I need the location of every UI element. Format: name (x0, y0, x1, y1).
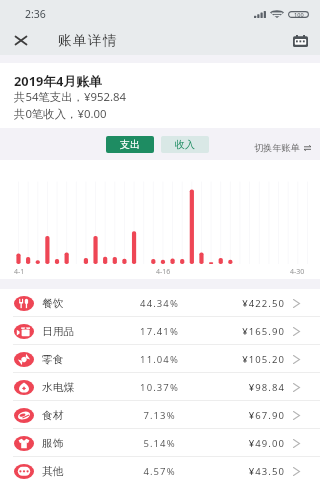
staticText: 食材 (42, 409, 64, 422)
staticText: ¥49.00 (225, 437, 285, 450)
staticText: 4.57% (129, 465, 190, 478)
staticText: ¥67.90 (225, 409, 285, 422)
staticText: 4-16 (156, 267, 171, 277)
button[interactable]: 日用品 (0, 317, 320, 345)
staticText: 2019年4月账单 (14, 72, 102, 89)
staticText: 收入 (175, 138, 195, 151)
button[interactable]: 收入 (161, 136, 209, 153)
staticText: 零食 (42, 353, 64, 366)
staticText: 账单详情 (58, 32, 118, 49)
button[interactable]: 水电煤 (0, 373, 320, 401)
staticText: 17.41% (129, 325, 190, 338)
button[interactable]: Close (9, 29, 32, 52)
staticText: ¥165.90 (225, 325, 285, 338)
staticText: 服饰 (42, 437, 64, 450)
button[interactable]: Calendar (290, 31, 310, 51)
button[interactable]: 切换年账单 (254, 142, 311, 154)
staticText: 2:36 (25, 7, 46, 21)
staticText: 5.14% (129, 437, 190, 450)
staticText: 支出 (120, 138, 140, 151)
button[interactable]: 餐饮 (0, 289, 320, 317)
button[interactable]: 服饰 (0, 429, 320, 457)
button[interactable]: 其他 (0, 457, 320, 480)
staticText: 10.37% (129, 381, 190, 394)
staticText: 水电煤 (42, 381, 75, 394)
staticText: 11.04% (129, 353, 190, 366)
staticText: 100 (294, 11, 304, 18)
staticText: ¥422.50 (225, 297, 285, 310)
staticText: ¥105.20 (225, 353, 285, 366)
staticText: 4-1 (14, 267, 25, 277)
button[interactable]: 食材 (0, 401, 320, 429)
staticText: ¥43.50 (225, 465, 285, 478)
staticText: 切换年账单 (254, 142, 300, 154)
staticText: 44.34% (129, 297, 190, 310)
staticText: 4-30 (290, 267, 305, 277)
staticText: ¥98.84 (225, 381, 285, 394)
staticText: 其他 (42, 465, 64, 478)
staticText: 共0笔收入，¥0.00 (14, 106, 107, 122)
staticText: 7.13% (129, 409, 190, 422)
staticText: 共54笔支出，¥952.84 (14, 89, 127, 105)
button[interactable]: 支出 (106, 136, 154, 153)
button[interactable]: 零食 (0, 345, 320, 373)
staticText: 日用品 (42, 325, 75, 338)
staticText: 餐饮 (42, 297, 64, 310)
